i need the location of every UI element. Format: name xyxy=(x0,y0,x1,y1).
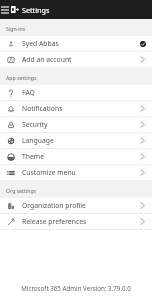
staticText: Security xyxy=(22,120,133,129)
staticText: Customize menu xyxy=(22,168,133,177)
staticText: Add an account xyxy=(22,55,133,64)
button[interactable]: Open navigation menu xyxy=(1,7,9,13)
staticText: Org settings xyxy=(6,187,37,194)
button[interactable]: Release preferences xyxy=(0,214,152,230)
staticText: Sign-ins xyxy=(6,25,26,32)
staticText: FAQ xyxy=(22,88,133,97)
staticText: Syed Abbas xyxy=(22,39,133,48)
button[interactable]: Theme xyxy=(0,149,152,165)
button[interactable]: Customize menu xyxy=(0,165,152,181)
staticText: Language xyxy=(22,136,133,145)
button[interactable]: Language xyxy=(0,133,152,149)
button[interactable]: Syed Abbas xyxy=(0,36,152,52)
staticText: Theme xyxy=(22,152,133,161)
staticText: Microsoft 365 Admin Version: 3.79.0.0 xyxy=(0,284,152,292)
staticText: Release preferences xyxy=(22,217,133,226)
button[interactable]: Add an account xyxy=(0,52,152,68)
button[interactable]: Notifications xyxy=(0,101,152,117)
staticText: Settings xyxy=(22,5,50,15)
staticText: Organization profile xyxy=(22,201,133,210)
button[interactable]: Organization profile xyxy=(0,198,152,214)
button[interactable]: FAQ xyxy=(0,85,152,101)
staticText: App settings xyxy=(6,74,37,81)
button[interactable]: Security xyxy=(0,117,152,133)
staticText: Notifications xyxy=(22,104,133,113)
